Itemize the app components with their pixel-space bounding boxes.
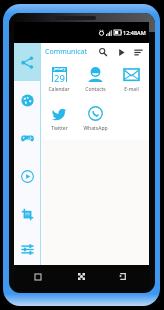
button[interactable]: Play xyxy=(115,46,127,58)
button[interactable]: WhatsApp xyxy=(77,106,113,132)
button[interactable]: Photos xyxy=(14,195,41,233)
button[interactable]: Sort xyxy=(132,46,144,58)
staticText: E-mail xyxy=(124,86,139,93)
button[interactable]: Recents xyxy=(31,270,44,283)
staticText: Communicat xyxy=(45,47,88,57)
button[interactable]: january xyxy=(41,67,77,93)
button[interactable]: Twitter xyxy=(41,106,77,132)
button[interactable]: Back xyxy=(116,270,129,283)
staticText: Contacts xyxy=(85,86,106,93)
button[interactable]: Browser xyxy=(14,81,41,119)
staticText: january xyxy=(54,67,66,71)
button[interactable]: Share xyxy=(14,43,41,81)
button[interactable]: Home xyxy=(75,270,88,283)
button[interactable]: Search xyxy=(97,46,109,58)
button[interactable]: E-mail xyxy=(113,67,149,93)
staticText: Twitter xyxy=(51,125,68,132)
button[interactable]: Tools xyxy=(14,233,41,265)
button[interactable]: Games xyxy=(14,119,41,157)
button[interactable]: Media xyxy=(14,157,41,195)
staticText: 29 xyxy=(54,72,65,82)
button[interactable]: Contacts xyxy=(77,67,113,93)
staticText: Calendar xyxy=(48,86,70,93)
staticText: WhatsApp xyxy=(83,125,108,132)
staticText: 12:48AM xyxy=(123,29,146,36)
